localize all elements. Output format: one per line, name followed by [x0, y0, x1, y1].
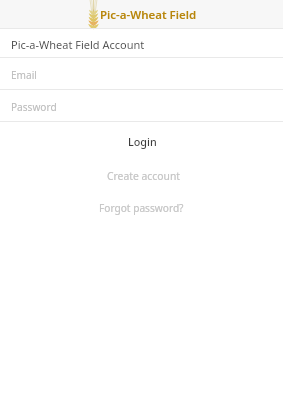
other: Pic-a-Wheat Field logo [87, 0, 100, 28]
button[interactable]: Login [0, 130, 283, 152]
button[interactable]: Forgot password? [0, 197, 283, 219]
button[interactable]: Password [0, 91, 283, 122]
staticText: Pic-a-Wheat Field Account [11, 37, 145, 52]
staticText: Password [11, 100, 57, 114]
staticText: Email [11, 68, 37, 82]
button[interactable]: Create account [0, 165, 283, 187]
button[interactable]: Email [0, 59, 283, 90]
staticText: Forgot password? [99, 201, 184, 215]
button[interactable]: Pic-a-Wheat Field Account [0, 29, 283, 58]
staticText: Pic-a-Wheat Field [100, 7, 197, 23]
staticText: Login [128, 134, 157, 149]
button[interactable]: Pic-a-Wheat Field logo [87, 0, 197, 28]
staticText: Create account [107, 169, 181, 183]
